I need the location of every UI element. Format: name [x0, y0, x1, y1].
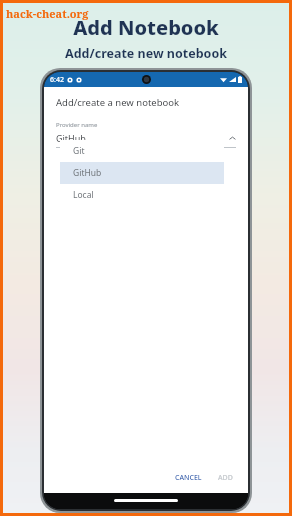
other: Collapse provider list — [229, 135, 236, 142]
button[interactable]: Local — [60, 184, 224, 206]
staticText: GitHub — [73, 167, 102, 179]
button[interactable]: Git — [60, 140, 224, 162]
staticText: ADD — [218, 473, 233, 483]
staticText: CANCEL — [175, 473, 202, 483]
staticText: Add/create new notebook — [65, 45, 227, 62]
staticText: Add/create a new notebook — [56, 96, 180, 109]
staticText: 6:42 — [50, 75, 64, 85]
staticText: Git — [73, 145, 85, 157]
button[interactable]: GitHub — [60, 162, 224, 184]
staticText: Local — [73, 189, 94, 201]
button[interactable]: CANCEL — [170, 470, 207, 486]
staticText: GitHub — [56, 132, 229, 144]
staticText: Provider name — [56, 121, 98, 129]
staticText: Add Notebook — [73, 14, 219, 41]
button[interactable]: ADD — [213, 470, 238, 486]
button[interactable]: Provider name — [56, 121, 236, 148]
staticText: hack-cheat.org — [6, 6, 89, 21]
